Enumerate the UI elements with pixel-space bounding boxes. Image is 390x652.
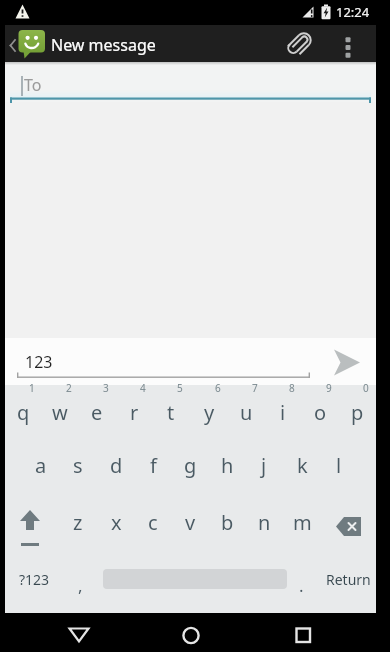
button[interactable]: r — [116, 397, 152, 427]
button[interactable]: h — [209, 450, 245, 480]
staticText: Return — [326, 570, 371, 589]
button[interactable]: e — [79, 397, 115, 427]
staticText: h — [221, 452, 234, 479]
button[interactable]: f — [135, 450, 171, 480]
button[interactable] — [10, 505, 52, 550]
staticText: z — [73, 509, 83, 536]
staticText: ?123 — [19, 570, 50, 589]
button[interactable] — [166, 613, 216, 652]
button[interactable]: c — [135, 507, 171, 537]
staticText: 3 — [103, 381, 109, 393]
button[interactable] — [278, 613, 328, 652]
button[interactable]: o — [302, 397, 338, 427]
button[interactable]: a — [23, 450, 59, 480]
staticText: k — [297, 452, 308, 479]
button[interactable] — [330, 508, 370, 544]
staticText: b — [221, 509, 234, 536]
button[interactable]: t — [153, 397, 189, 427]
button[interactable]: b — [209, 507, 245, 537]
staticText: 2 — [66, 381, 72, 393]
button[interactable]: l — [321, 450, 357, 480]
staticText: 123 — [25, 351, 53, 373]
button[interactable]: g — [172, 450, 208, 480]
staticText: g — [184, 452, 197, 479]
button[interactable]: d — [98, 450, 134, 480]
staticText: 7 — [252, 381, 258, 393]
staticText: o — [314, 399, 327, 426]
button[interactable]: z — [60, 507, 96, 537]
staticText: a — [35, 452, 47, 479]
staticText: d — [110, 452, 123, 479]
staticText: i — [280, 399, 286, 426]
button[interactable]: y — [191, 397, 227, 427]
button[interactable]: ?123 — [12, 566, 56, 592]
button[interactable] — [54, 613, 104, 652]
button[interactable]: i — [265, 397, 301, 427]
button[interactable]: . — [287, 570, 315, 600]
button[interactable] — [322, 340, 372, 384]
staticText: 0 — [363, 381, 369, 393]
button[interactable]: k — [284, 450, 320, 480]
button[interactable]: w — [42, 397, 78, 427]
staticText: 5 — [177, 381, 183, 393]
staticText: . — [299, 574, 304, 597]
staticText: 12:24 — [336, 3, 370, 20]
staticText: s — [73, 452, 83, 479]
button[interactable] — [5, 338, 376, 385]
button[interactable]: q — [5, 397, 41, 427]
staticText: 6 — [215, 381, 221, 393]
staticText: x — [111, 509, 122, 536]
button[interactable]: s — [60, 450, 96, 480]
staticText: y — [204, 399, 215, 426]
staticText: New message — [51, 34, 156, 56]
button[interactable]: p — [339, 397, 375, 427]
staticText: u — [240, 399, 253, 426]
button[interactable]: u — [228, 397, 264, 427]
button[interactable]: Return — [323, 566, 373, 592]
button[interactable]: m — [284, 507, 320, 537]
button[interactable]: j — [246, 450, 282, 480]
staticText: q — [17, 399, 30, 426]
staticText: c — [148, 509, 158, 536]
button[interactable] — [281, 27, 317, 61]
staticText: t — [167, 399, 175, 426]
staticText: To — [24, 74, 42, 96]
staticText: v — [185, 509, 196, 536]
staticText: j — [261, 452, 267, 479]
staticText: , — [78, 574, 83, 597]
staticText: 4 — [140, 381, 146, 393]
staticText: 9 — [326, 381, 332, 393]
button[interactable] — [5, 62, 376, 102]
staticText: f — [150, 452, 157, 479]
button[interactable]: x — [98, 507, 134, 537]
button[interactable]: v — [172, 507, 208, 537]
staticText: n — [258, 509, 271, 536]
staticText: l — [336, 452, 342, 479]
button[interactable]: n — [246, 507, 282, 537]
staticText: 8 — [289, 381, 295, 393]
staticText: 1 — [29, 381, 35, 393]
staticText: p — [351, 399, 364, 426]
staticText: e — [91, 399, 103, 426]
staticText: w — [52, 399, 68, 426]
button[interactable] — [336, 27, 360, 61]
button[interactable]: , — [66, 570, 94, 600]
staticText: m — [293, 509, 312, 536]
staticText: r — [130, 399, 139, 426]
button[interactable] — [0, 25, 48, 62]
